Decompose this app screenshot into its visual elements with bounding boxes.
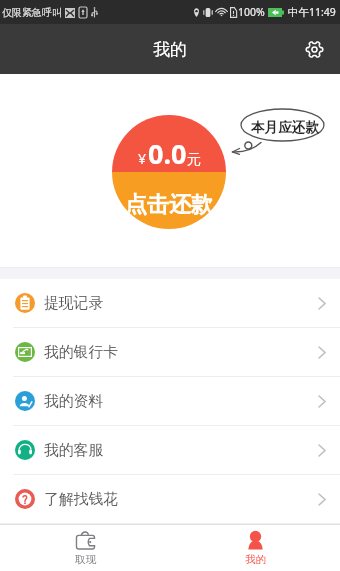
- staticText: 0.0: [148, 135, 187, 172]
- staticText: 仅限紧急呼叫: [2, 6, 62, 19]
- button[interactable]: 我的资料: [0, 377, 340, 425]
- button[interactable]: 提现记录: [0, 279, 340, 327]
- button[interactable]: 我的: [170, 525, 340, 571]
- staticText: 我的: [153, 39, 187, 60]
- button[interactable]: ¥: [112, 115, 226, 229]
- staticText: 取现: [75, 553, 96, 566]
- staticText: 我的银行卡: [44, 343, 118, 362]
- staticText: 我的客服: [44, 441, 104, 460]
- staticText: 元: [187, 151, 201, 169]
- staticText: 中午11:49: [288, 5, 336, 19]
- button[interactable]: 取现: [0, 525, 170, 571]
- staticText: 100%: [238, 5, 265, 19]
- staticText: 点击还款: [125, 191, 213, 219]
- staticText: ¥: [138, 149, 147, 168]
- staticText: 提现记录: [44, 294, 104, 313]
- button[interactable]: 我的银行卡: [0, 328, 340, 376]
- staticText: 本月应还款: [251, 119, 319, 136]
- button[interactable]: 我的客服: [0, 426, 340, 474]
- button[interactable]: 了解找钱花: [0, 475, 340, 523]
- button[interactable]: Settings: [296, 31, 332, 67]
- staticText: 我的: [245, 553, 266, 566]
- staticText: 了解找钱花: [44, 490, 118, 509]
- staticText: 我的资料: [44, 392, 104, 411]
